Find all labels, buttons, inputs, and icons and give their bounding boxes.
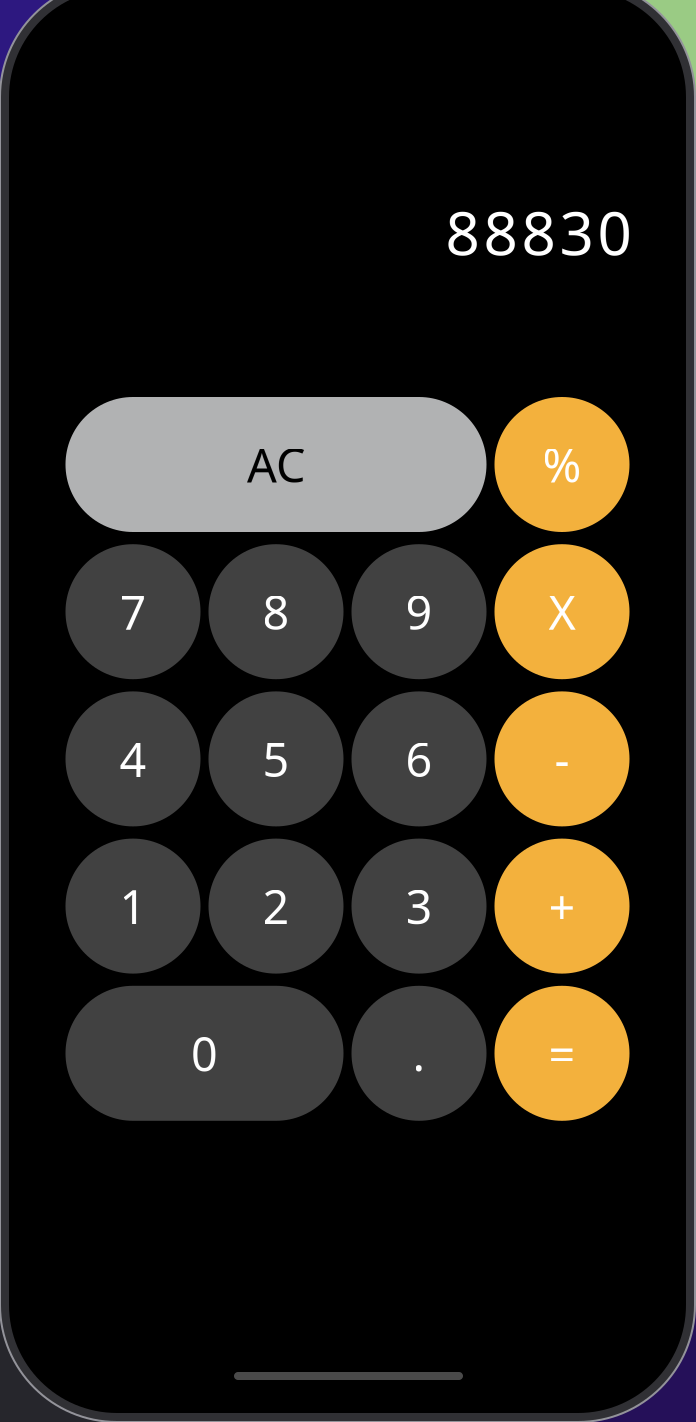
- button[interactable]: 3: [351, 839, 486, 974]
- button[interactable]: %: [494, 397, 629, 532]
- staticText: 0: [191, 1022, 218, 1084]
- button[interactable]: 1: [65, 839, 200, 974]
- button[interactable]: 8: [208, 544, 343, 679]
- staticText: -: [554, 728, 569, 790]
- staticText: AC: [247, 433, 305, 495]
- staticText: %: [542, 433, 581, 495]
- staticText: +: [548, 875, 575, 937]
- staticText: .: [412, 1022, 425, 1084]
- button[interactable]: 6: [351, 691, 486, 826]
- button[interactable]: 5: [208, 691, 343, 826]
- staticText: 2: [262, 875, 289, 937]
- button[interactable]: X: [494, 544, 629, 679]
- staticText: X: [548, 581, 575, 643]
- button[interactable]: =: [494, 986, 629, 1121]
- staticText: 1: [119, 875, 146, 937]
- button[interactable]: .: [351, 986, 486, 1121]
- staticText: 88830: [445, 192, 631, 272]
- button[interactable]: +: [494, 839, 629, 974]
- button[interactable]: AC: [65, 397, 486, 532]
- staticText: 7: [119, 581, 146, 643]
- button[interactable]: 9: [351, 544, 486, 679]
- staticText: 3: [405, 875, 432, 937]
- button[interactable]: 7: [65, 544, 200, 679]
- staticText: 4: [119, 728, 146, 790]
- button[interactable]: -: [494, 691, 629, 826]
- button[interactable]: 2: [208, 839, 343, 974]
- staticText: 5: [262, 728, 289, 790]
- staticText: 9: [405, 581, 432, 643]
- staticText: =: [548, 1022, 575, 1084]
- button[interactable]: 0: [65, 986, 343, 1121]
- staticText: 6: [405, 728, 432, 790]
- button[interactable]: 4: [65, 691, 200, 826]
- staticText: 8: [262, 581, 289, 643]
